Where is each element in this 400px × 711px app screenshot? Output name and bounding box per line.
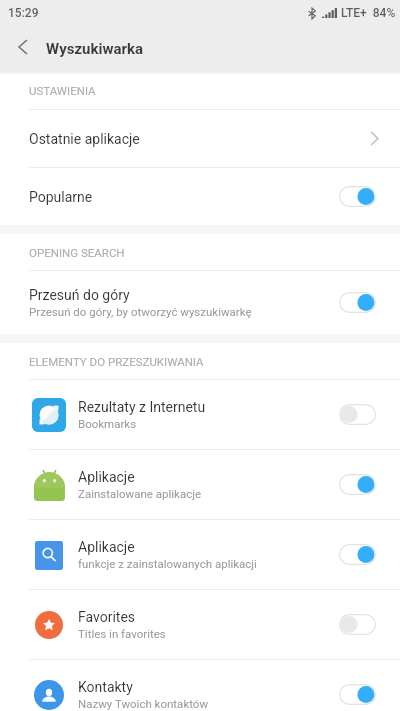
button[interactable]: Rezultaty z Internetu: [0, 380, 400, 449]
staticText: OPENING SEARCH: [29, 246, 125, 259]
staticText: Przesuń do góry, by otworzyć wyszukiwark…: [29, 305, 252, 318]
button[interactable]: Turn off: [339, 684, 376, 705]
staticText: ELEMENTY DO PRZESZUKIWANIA: [29, 355, 204, 368]
button[interactable]: Favorites: [0, 590, 400, 659]
staticText: Aplikacje: [78, 469, 135, 485]
button[interactable]: Turn off: [339, 544, 376, 565]
staticText: Wyszukiwarka: [46, 40, 143, 58]
staticText: Przesuń do góry: [29, 287, 130, 303]
button[interactable]: Back: [0, 27, 44, 71]
button[interactable]: Turn off: [339, 186, 376, 207]
staticText: Bookmarks: [78, 417, 137, 430]
staticText: Zainstalowane aplikacje: [78, 487, 202, 500]
staticText: funkcje z zainstalowanych aplikacji: [78, 557, 257, 570]
staticText: USTAWIENIA: [29, 84, 96, 97]
button[interactable]: Turn on: [339, 404, 376, 425]
staticText: Rezultaty z Internetu: [78, 399, 206, 415]
staticText: LTE+ 84%: [341, 6, 396, 20]
button[interactable]: Aplikacje: [0, 450, 400, 519]
button[interactable]: Turn off: [339, 474, 376, 495]
button[interactable]: Ostatnie aplikacje: [0, 110, 400, 167]
button[interactable]: Turn off: [339, 292, 376, 313]
staticText: Kontakty: [78, 679, 133, 695]
button[interactable]: Popularne: [0, 168, 400, 225]
button[interactable]: Kontakty: [0, 660, 400, 711]
staticText: Aplikacje: [78, 539, 135, 555]
staticText: Nazwy Twoich kontaktów: [78, 697, 209, 710]
staticText: 15:29: [8, 6, 39, 20]
button[interactable]: Aplikacje: [0, 520, 400, 589]
staticText: Favorites: [78, 609, 136, 625]
staticText: Titles in favorites: [78, 627, 166, 640]
button[interactable]: Turn on: [339, 614, 376, 635]
staticText: Popularne: [29, 189, 93, 205]
staticText: Ostatnie aplikacje: [29, 131, 140, 147]
button[interactable]: Przesuń do góry: [0, 271, 400, 334]
